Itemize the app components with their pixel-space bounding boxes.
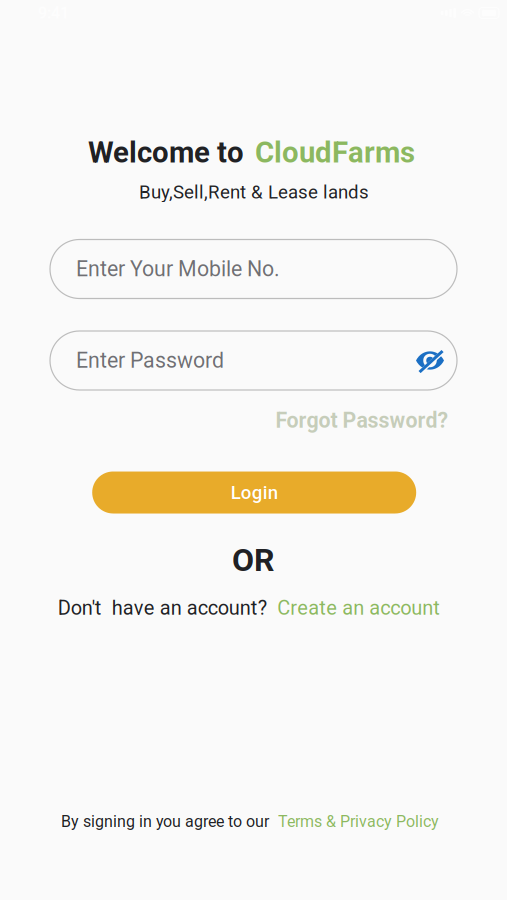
- staticText: CloudFarms: [255, 135, 415, 170]
- staticText: Forgot Password?: [276, 408, 449, 433]
- staticText: Terms & Privacy Policy: [278, 812, 439, 831]
- button[interactable]: Show password: [416, 348, 444, 372]
- staticText: Enter Your Mobile No.: [76, 256, 280, 281]
- button[interactable]: Login: [92, 471, 416, 513]
- staticText: Buy,Sell,Rent & Lease lands: [139, 181, 369, 203]
- staticText: Welcome to: [88, 135, 244, 170]
- staticText: Don't have an account?: [58, 596, 267, 620]
- button[interactable]: Forgot Password?: [276, 404, 449, 437]
- staticText: OR: [232, 541, 275, 579]
- button[interactable]: Create an account: [277, 596, 440, 620]
- button[interactable]: Enter Your Mobile No.: [50, 239, 457, 298]
- staticText: Create an account: [277, 596, 440, 620]
- staticText: By signing in you agree to our: [61, 812, 269, 831]
- staticText: Login: [231, 482, 278, 503]
- button[interactable]: Terms & Privacy Policy: [278, 812, 439, 831]
- staticText: Enter Password: [76, 348, 224, 373]
